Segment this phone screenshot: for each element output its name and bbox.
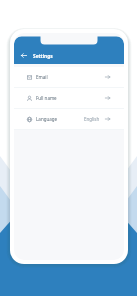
button[interactable]: Language bbox=[14, 109, 124, 129]
staticText: Language bbox=[36, 116, 58, 122]
button[interactable]: Back bbox=[19, 50, 29, 60]
staticText: English bbox=[84, 116, 100, 122]
button[interactable]: Full name bbox=[14, 88, 124, 108]
staticText: Settings bbox=[33, 53, 53, 60]
staticText: Email bbox=[36, 74, 48, 80]
staticText: Full name bbox=[36, 95, 57, 101]
button[interactable]: Email bbox=[14, 67, 124, 87]
